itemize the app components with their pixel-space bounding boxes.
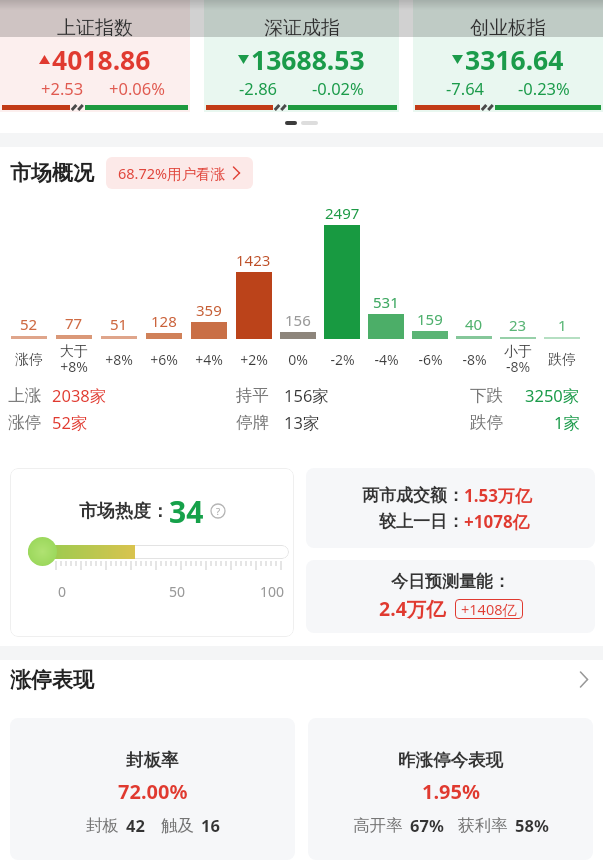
button[interactable]: 两市成交额：: [306, 468, 595, 548]
staticText: 涨停: [15, 351, 43, 369]
staticText: 涨停表现: [10, 667, 94, 693]
staticText: 昨涨停今表现: [398, 749, 503, 771]
staticText: 2.4万亿: [379, 595, 446, 622]
staticText: -2%: [330, 350, 355, 369]
staticText: 159: [417, 309, 443, 329]
staticText: +8%: [105, 350, 133, 369]
staticText: 58%: [515, 814, 549, 836]
button[interactable]: 昨涨停今表现: [308, 718, 593, 860]
staticText: 大于 +8%: [60, 343, 88, 376]
staticText: 较上一日：: [379, 511, 464, 532]
staticText: +4%: [195, 350, 223, 369]
staticText: -6%: [418, 350, 443, 369]
staticText: 两市成交额：: [362, 485, 464, 506]
staticText: 封板率: [126, 749, 179, 771]
staticText: 52家: [52, 411, 88, 434]
staticText: 下跌: [470, 385, 503, 406]
staticText: 停牌: [236, 412, 269, 433]
staticText: 531: [373, 292, 399, 312]
button[interactable]: 市场热度：: [10, 468, 294, 637]
staticText: 深证成指: [264, 16, 340, 40]
staticText: 40: [465, 314, 483, 334]
staticText: 创业板指: [470, 16, 546, 40]
staticText: 52: [20, 314, 38, 334]
staticText: 获利率: [458, 815, 508, 836]
staticText: -0.23%: [518, 77, 570, 99]
staticText: -8%: [462, 350, 487, 369]
staticText: 跌停: [470, 412, 503, 433]
staticText: 4018.86: [52, 42, 151, 76]
button[interactable]: 68.72%用户看涨: [106, 157, 253, 189]
staticText: +2.53: [41, 77, 84, 99]
staticText: 16: [201, 814, 220, 836]
staticText: 72.00%: [118, 778, 188, 805]
staticText: 359: [196, 300, 222, 320]
staticText: 市场概况: [10, 160, 94, 186]
staticText: +2%: [240, 350, 268, 369]
staticText: 51: [110, 314, 128, 334]
button[interactable]: 创业板指: [413, 0, 603, 112]
staticText: ?: [216, 505, 221, 518]
staticText: 1.95%: [422, 778, 480, 805]
staticText: 42: [126, 814, 145, 836]
staticText: 100: [260, 582, 285, 601]
staticText: 涨停: [8, 412, 41, 433]
staticText: 今日预测量能：: [391, 571, 510, 592]
staticText: 持平: [236, 385, 269, 406]
button[interactable]: 今日预测量能：: [306, 560, 595, 633]
staticText: 跌停: [548, 351, 576, 369]
staticText: 触及: [161, 815, 194, 836]
staticText: 67%: [410, 814, 444, 836]
button[interactable]: 封板率: [10, 718, 295, 860]
staticText: 156家: [284, 384, 329, 407]
button[interactable]: 深证成指: [204, 0, 399, 112]
staticText: 上涨: [8, 385, 41, 406]
staticText: -4%: [374, 350, 399, 369]
staticText: 小于 -8%: [504, 343, 532, 376]
staticText: +1408亿: [461, 599, 517, 619]
staticText: 0: [58, 582, 67, 601]
staticText: +0.06%: [109, 77, 165, 99]
staticText: 上证指数: [57, 16, 133, 40]
staticText: 68.72%用户看涨: [118, 163, 226, 183]
staticText: +6%: [150, 350, 178, 369]
staticText: 3316.64: [465, 42, 564, 76]
staticText: 市场热度：: [79, 500, 169, 523]
staticText: -2.86: [239, 77, 278, 99]
staticText: 77: [65, 313, 83, 333]
staticText: 2038家: [52, 384, 107, 407]
staticText: 23: [509, 315, 527, 335]
staticText: -7.64: [446, 77, 485, 99]
staticText: 13688.53: [251, 42, 365, 76]
staticText: 2497: [325, 203, 360, 223]
staticText: 1: [558, 315, 567, 335]
staticText: 高开率: [353, 815, 403, 836]
staticText: 1家: [554, 411, 580, 434]
staticText: -0.02%: [312, 77, 364, 99]
staticText: 1423: [236, 250, 271, 270]
staticText: 50: [169, 582, 186, 601]
staticText: 1.53万亿: [464, 484, 532, 507]
staticText: 128: [151, 311, 177, 331]
staticText: +1078亿: [464, 510, 530, 533]
staticText: 3250家: [525, 384, 580, 407]
button[interactable]: 上证指数: [0, 0, 190, 112]
staticText: 封板: [86, 815, 119, 836]
staticText: 156: [285, 310, 311, 330]
button[interactable]: 涨停表现: [10, 664, 589, 695]
staticText: 0%: [288, 350, 308, 369]
staticText: 13家: [284, 411, 320, 434]
staticText: 34: [169, 491, 204, 532]
